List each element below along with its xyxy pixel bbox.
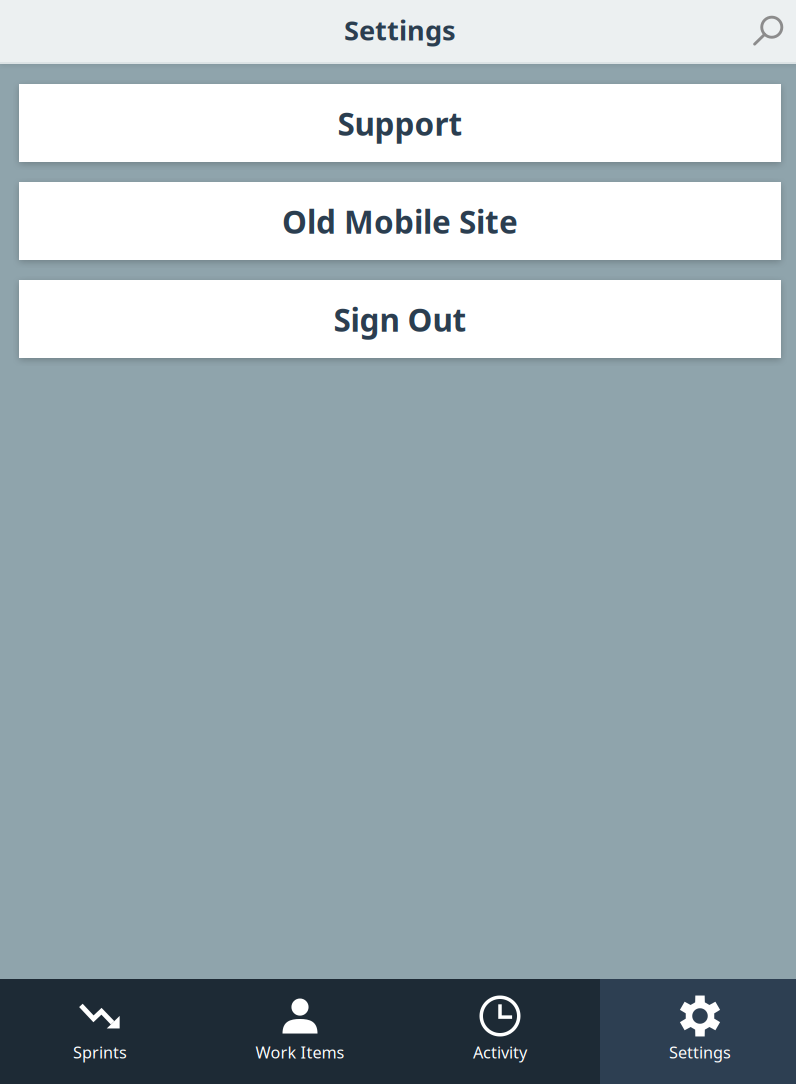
button[interactable]: Work Items: [200, 979, 400, 1084]
button[interactable]: Activity: [400, 979, 600, 1084]
staticText: Old Mobile Site: [282, 200, 518, 243]
staticText: Activity: [473, 1041, 527, 1063]
button[interactable]: Sign Out: [19, 280, 781, 358]
staticText: Work Items: [255, 1041, 344, 1063]
button[interactable]: Search: [735, 0, 796, 62]
staticText: Support: [337, 102, 462, 145]
staticText: Settings: [669, 1041, 731, 1063]
staticText: Sprints: [73, 1041, 127, 1063]
button[interactable]: Support: [19, 84, 781, 162]
button[interactable]: Sprints: [0, 979, 200, 1084]
button[interactable]: Old Mobile Site: [19, 182, 781, 260]
button[interactable]: Settings: [600, 979, 796, 1084]
staticText: Sign Out: [333, 298, 466, 341]
staticText: Settings: [344, 11, 456, 48]
